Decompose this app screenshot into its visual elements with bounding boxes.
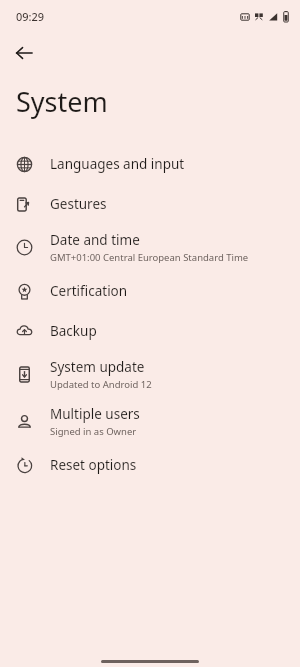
staticText: Signed in as Owner: [50, 425, 137, 438]
button[interactable]: Reset options: [0, 445, 300, 485]
button[interactable]: Gestures: [0, 184, 300, 224]
staticText: Languages and input: [50, 155, 185, 173]
staticText: Date and time: [50, 231, 140, 249]
staticText: Backup: [50, 322, 97, 340]
staticText: System: [16, 83, 108, 120]
staticText: Multiple users: [50, 405, 140, 423]
button[interactable]: Backup: [0, 311, 300, 351]
button[interactable]: System update: [0, 351, 300, 398]
staticText: 09:29: [16, 9, 45, 24]
staticText: Gestures: [50, 195, 107, 213]
staticText: Certification: [50, 282, 128, 300]
staticText: GMT+01:00 Central European Standard Time: [50, 251, 249, 264]
button[interactable]: Date and time: [0, 224, 300, 271]
button[interactable]: Languages and input: [0, 144, 300, 184]
button[interactable]: Certification: [0, 271, 300, 311]
staticText: Reset options: [50, 456, 137, 474]
button[interactable]: Multiple users: [0, 398, 300, 445]
button[interactable]: Back: [5, 34, 42, 71]
staticText: System update: [50, 358, 145, 376]
staticText: Updated to Android 12: [50, 378, 152, 391]
